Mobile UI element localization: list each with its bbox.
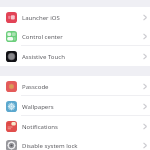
staticText: Assistive Touch xyxy=(22,53,142,61)
button[interactable]: Passcode xyxy=(0,76,150,96)
staticText: Notifications xyxy=(22,123,142,131)
button[interactable]: Wallpapers xyxy=(0,96,150,116)
staticText: Launcher iOS xyxy=(22,14,142,22)
button[interactable]: Assistive Touch xyxy=(0,46,150,66)
staticText: Wallpapers xyxy=(22,103,142,111)
staticText: Disable system lock xyxy=(22,142,142,150)
button[interactable]: Launcher iOS xyxy=(0,7,150,27)
button[interactable]: Notifications xyxy=(0,116,150,136)
button[interactable]: Control center xyxy=(0,26,150,46)
staticText: Control center xyxy=(22,33,142,41)
staticText: Passcode xyxy=(22,83,142,91)
button[interactable]: Disable system lock xyxy=(0,135,150,150)
